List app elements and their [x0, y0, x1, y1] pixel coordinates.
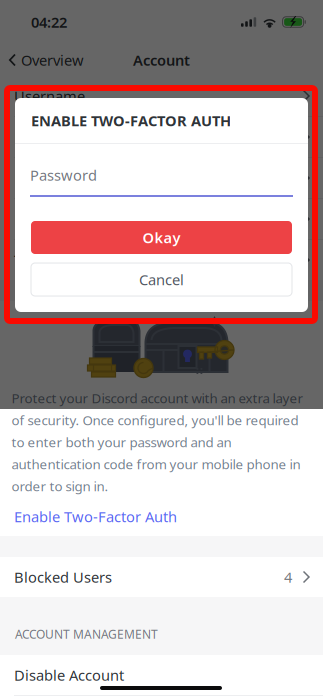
- button[interactable]: Phone Number: [0, 158, 323, 198]
- staticText: 04:22: [31, 12, 67, 32]
- staticText: Enable Two-Factor Auth: [14, 507, 177, 526]
- button[interactable]: Disable Account: [0, 655, 323, 695]
- button[interactable]: Overview: [0, 45, 92, 75]
- button[interactable]: Username: [0, 76, 323, 116]
- staticText: Off: [271, 250, 292, 270]
- staticText: Email: [14, 127, 52, 147]
- staticText: Phone Number: [14, 168, 119, 188]
- button[interactable]: Cancel: [31, 263, 292, 296]
- button[interactable]: Okay: [31, 221, 292, 254]
- staticText: Okay: [142, 228, 180, 247]
- button[interactable]: Email: [0, 117, 323, 157]
- staticText: ACCOUNT MANAGEMENT: [15, 626, 158, 642]
- staticText: Disable Account: [14, 665, 124, 685]
- staticText: ENABLE TWO-FACTOR AUTH: [31, 111, 231, 130]
- staticText: of security. Once configured, you'll be …: [11, 411, 298, 429]
- staticText: Password: [30, 165, 97, 185]
- button[interactable]: Enable Two-Factor Auth: [0, 497, 323, 536]
- staticText: Password: [14, 209, 81, 229]
- button[interactable]: Password: [0, 199, 323, 239]
- staticText: 4: [284, 567, 292, 587]
- staticText: Account: [133, 50, 190, 70]
- staticText: order to sign in.: [11, 477, 108, 495]
- staticText: Two-Factor Auth: [14, 250, 127, 270]
- button[interactable]: Two-Factor Auth: [0, 240, 323, 280]
- button[interactable]: Blocked Users: [0, 557, 323, 597]
- staticText: Overview: [21, 50, 84, 70]
- staticText: Protect your Discord account with an ext…: [11, 389, 303, 407]
- staticText: Blocked Users: [14, 567, 112, 587]
- staticText: authentication code from your mobile pho…: [11, 455, 300, 473]
- staticText: to enter both your password and an: [11, 433, 231, 451]
- staticText: Cancel: [139, 270, 184, 289]
- staticText: Username: [14, 86, 85, 106]
